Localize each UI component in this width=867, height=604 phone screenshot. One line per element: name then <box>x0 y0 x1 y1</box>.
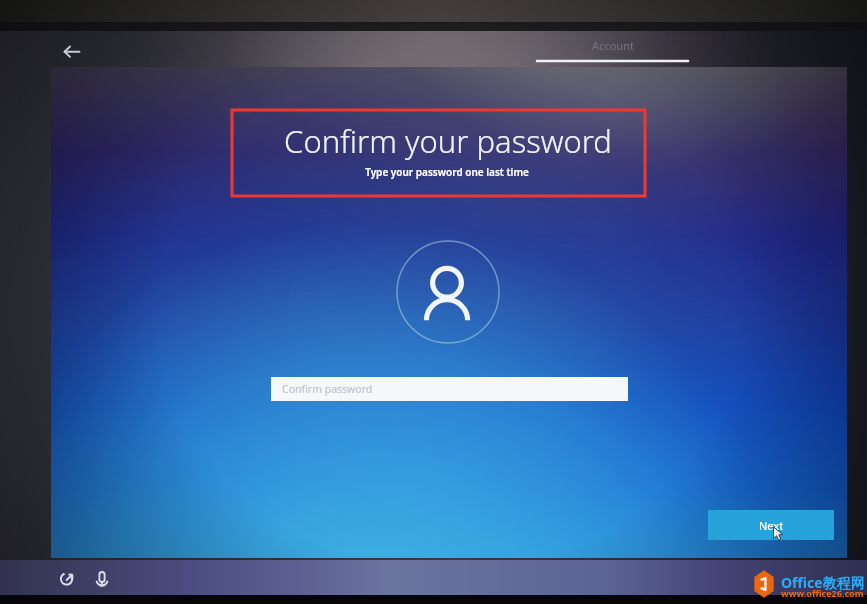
staticText: Confirm your password <box>284 120 612 160</box>
button[interactable]: Confirm password <box>271 377 628 401</box>
staticText: Confirm password <box>282 382 373 396</box>
staticText: Type your password one last time <box>365 165 529 179</box>
staticText: Account <box>592 38 634 53</box>
button[interactable]: Next <box>708 510 834 540</box>
staticText: Office教程网 <box>781 573 865 592</box>
button[interactable]: Back <box>57 40 87 64</box>
button[interactable]: Ease of access <box>55 568 78 591</box>
staticText: www.office26.com <box>781 587 864 599</box>
staticText: Next <box>759 518 784 533</box>
button[interactable]: Account <box>537 38 688 64</box>
button[interactable]: Microphone <box>91 568 114 591</box>
